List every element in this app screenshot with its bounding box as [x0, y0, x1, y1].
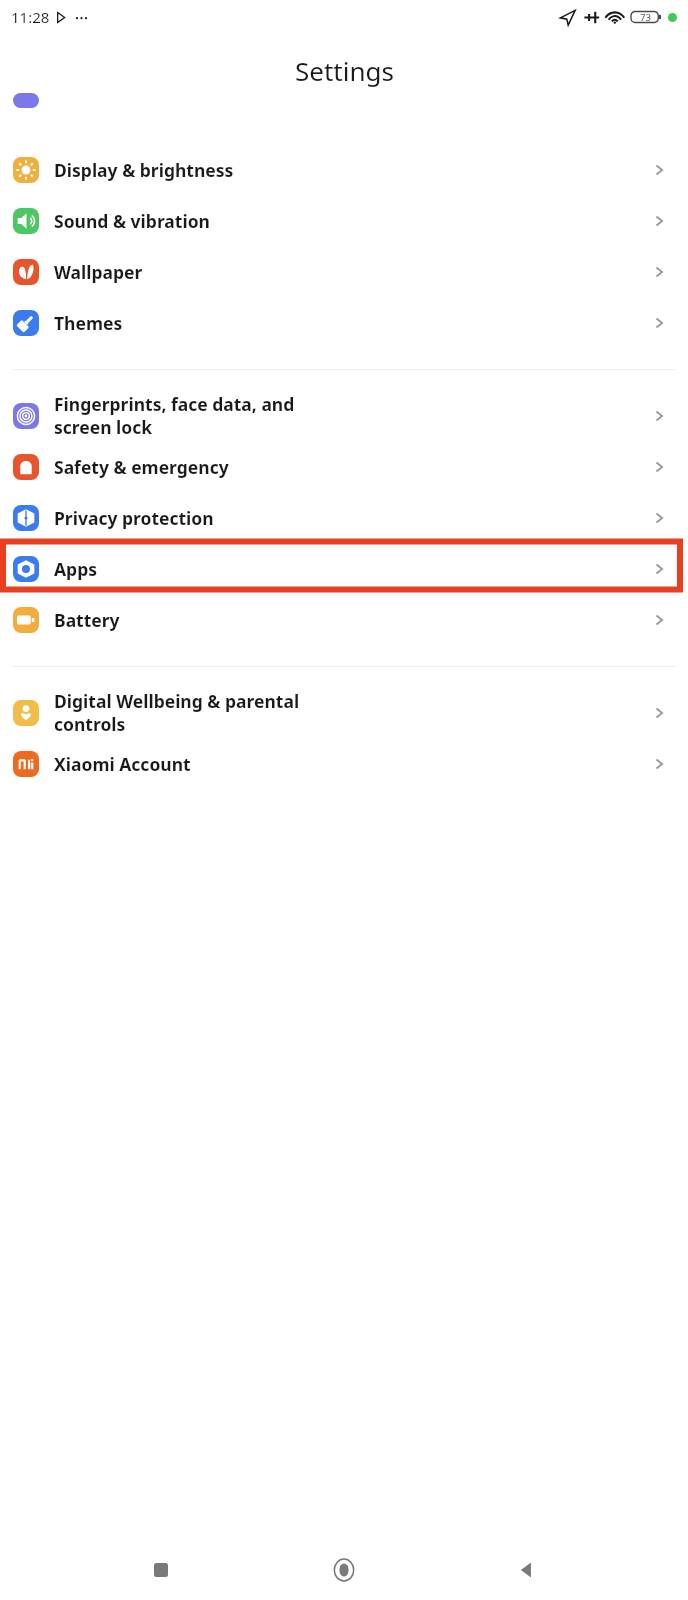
staticText: Wallpaper [54, 260, 652, 284]
staticText: Display & brightness [54, 158, 652, 182]
button[interactable]: Xiaomi Account [0, 738, 688, 789]
staticText: Apps [54, 557, 652, 581]
button[interactable]: Battery [0, 594, 688, 645]
button[interactable]: Apps [0, 543, 688, 594]
button[interactable]: Fingerprints, face data, and screen lock [0, 390, 688, 441]
staticText: Settings [295, 53, 394, 88]
button[interactable]: Back [505, 1548, 549, 1592]
staticText: Themes [54, 311, 652, 335]
button[interactable]: Digital Wellbeing & parental controls [0, 687, 688, 738]
button[interactable]: Privacy protection [0, 492, 688, 543]
staticText: Fingerprints, face data, and screen lock [54, 392, 652, 439]
staticText: Xiaomi Account [54, 752, 652, 776]
staticText: 11:28 [11, 7, 50, 27]
staticText: Digital Wellbeing & parental controls [54, 689, 652, 736]
button[interactable]: Display & brightness [0, 144, 688, 195]
button[interactable]: Recent apps [139, 1548, 183, 1592]
button[interactable]: Safety & emergency [0, 441, 688, 492]
staticText: Safety & emergency [54, 455, 652, 479]
button[interactable]: Wallpaper [0, 246, 688, 297]
staticText: 73 [640, 11, 651, 24]
staticText: Privacy protection [54, 506, 652, 530]
button[interactable]: Sound & vibration [0, 195, 688, 246]
button[interactable]: Home [322, 1548, 366, 1592]
button[interactable]: Themes [0, 297, 688, 348]
staticText: Battery [54, 608, 652, 632]
staticText: Sound & vibration [54, 209, 652, 233]
